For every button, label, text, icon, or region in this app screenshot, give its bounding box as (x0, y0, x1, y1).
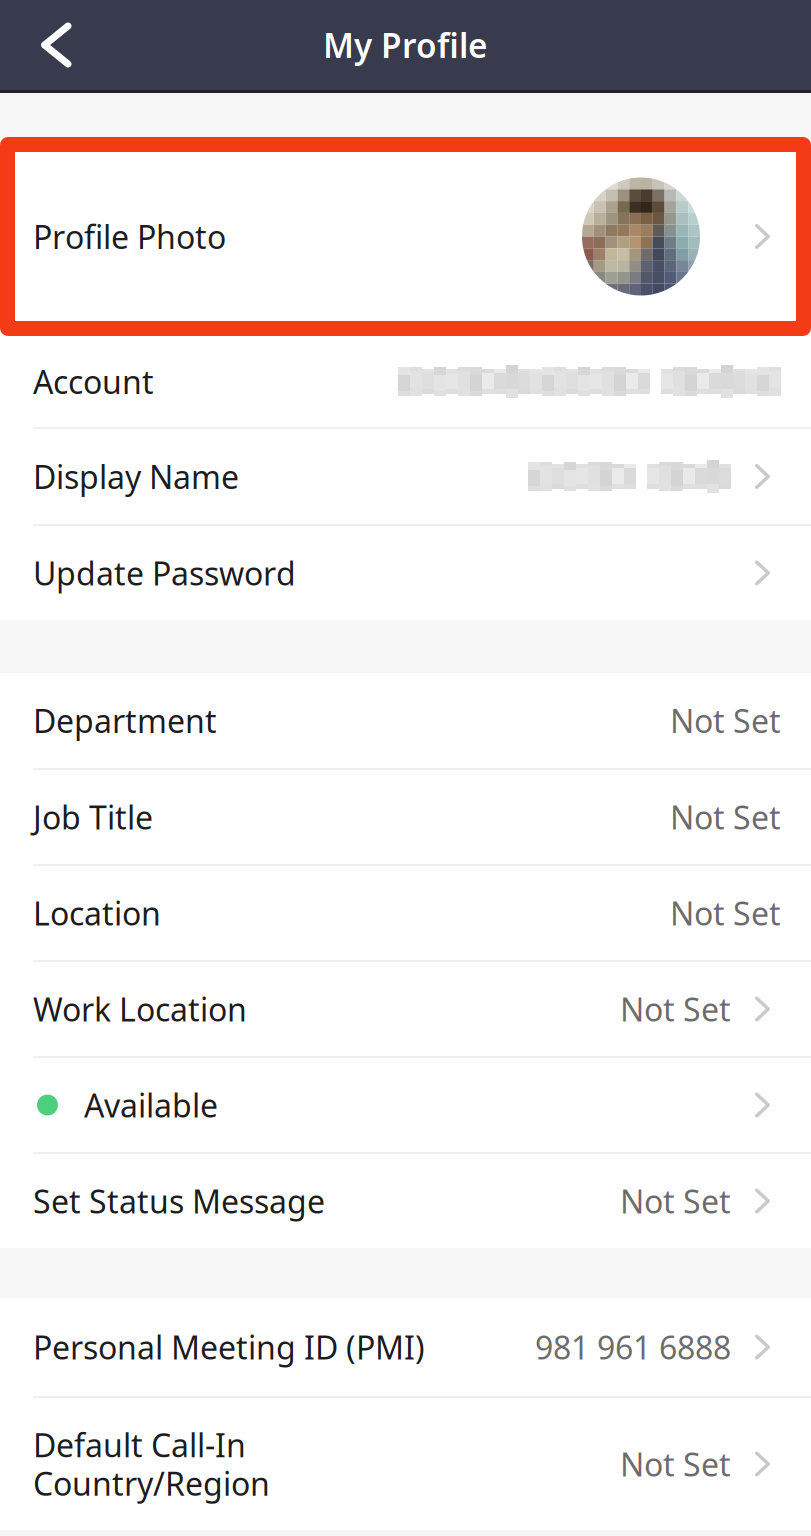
staticText: Not Set (620, 1443, 731, 1485)
staticText: Default Call-In (33, 1423, 246, 1466)
staticText: Location (33, 892, 161, 934)
button[interactable]: Available (0, 1058, 811, 1152)
staticText: Job Title (33, 796, 153, 838)
staticText: Not Set (620, 1180, 731, 1222)
staticText: My Profile (323, 23, 488, 67)
button[interactable]: Set Status Message (0, 1154, 811, 1248)
button[interactable]: Work Location (0, 962, 811, 1056)
staticText: Available (84, 1084, 218, 1126)
button[interactable]: Personal Meeting ID (PMI) (0, 1298, 811, 1396)
staticText: Account (33, 360, 154, 403)
staticText: Not Set (670, 796, 781, 838)
button[interactable]: Update Password (0, 526, 811, 620)
staticText: Not Set (670, 892, 781, 934)
staticText: Work Location (33, 988, 247, 1030)
button[interactable]: Location (0, 866, 811, 960)
staticText: Not Set (670, 699, 781, 742)
button[interactable]: Default Call-In (0, 1398, 811, 1530)
staticText: 981 961 6888 (535, 1326, 731, 1368)
button[interactable]: Back (0, 0, 95, 91)
staticText: Update Password (33, 552, 296, 594)
button[interactable]: Display Name (0, 429, 811, 524)
staticText: Department (33, 699, 217, 742)
button[interactable]: Department (0, 673, 811, 768)
staticText: Country/Region (33, 1462, 270, 1504)
button[interactable]: Account (0, 336, 811, 427)
button[interactable]: Profile Photo (0, 137, 811, 336)
staticText: Display Name (33, 455, 239, 498)
button[interactable]: Job Title (0, 770, 811, 864)
staticText: Not Set (620, 988, 731, 1030)
staticText: Profile Photo (33, 215, 226, 258)
staticText: Personal Meeting ID (PMI) (33, 1326, 425, 1368)
staticText: Set Status Message (33, 1180, 325, 1222)
